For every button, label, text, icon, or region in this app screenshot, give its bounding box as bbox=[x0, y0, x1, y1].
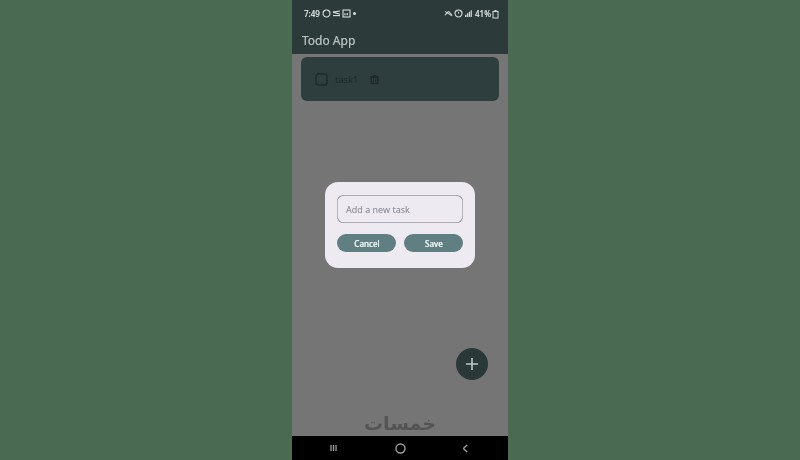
button[interactable]: Home bbox=[392, 440, 408, 456]
button[interactable]: Cancel bbox=[337, 234, 396, 252]
staticText: Cancel bbox=[354, 238, 380, 249]
button[interactable]: Back bbox=[458, 441, 472, 455]
staticText: task1 bbox=[335, 73, 359, 85]
button[interactable]: Save bbox=[404, 234, 463, 252]
button[interactable]: Add a new task bbox=[337, 195, 463, 223]
button[interactable]: Recent apps bbox=[328, 441, 342, 455]
button[interactable]: Add task bbox=[456, 348, 488, 380]
staticText: 7:49 bbox=[304, 8, 320, 19]
staticText: Todo App bbox=[302, 32, 356, 48]
staticText: خمسات bbox=[364, 412, 436, 434]
button[interactable]: Toggle task complete bbox=[316, 74, 327, 85]
staticText: Add a new task bbox=[346, 203, 410, 215]
staticText: Save bbox=[425, 238, 443, 249]
button[interactable]: Delete task bbox=[369, 74, 380, 85]
button[interactable]: Toggle task complete bbox=[301, 57, 499, 101]
staticText: 41% bbox=[475, 8, 491, 19]
